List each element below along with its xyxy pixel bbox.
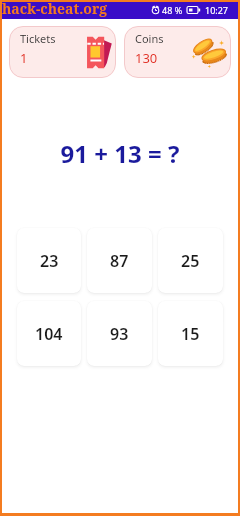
button[interactable]: 23 <box>17 228 81 293</box>
staticText: 15 <box>181 323 200 345</box>
button[interactable]: 104 <box>17 301 81 366</box>
staticText: 10:27 <box>205 4 229 16</box>
button[interactable]: Tickets <box>9 26 116 78</box>
button[interactable]: 15 <box>158 301 223 366</box>
staticText: 1 <box>20 49 28 67</box>
staticText: 93 <box>110 323 129 345</box>
staticText: 130 <box>135 49 158 67</box>
staticText: 23 <box>40 250 59 272</box>
staticText: 104 <box>35 323 63 345</box>
button[interactable]: 93 <box>87 301 152 366</box>
button[interactable]: 25 <box>158 228 223 293</box>
staticText: 25 <box>181 250 200 272</box>
staticText: 91 + 13 = ? <box>0 137 240 170</box>
staticText: hack-cheat.org <box>2 0 108 18</box>
button[interactable]: 87 <box>87 228 152 293</box>
staticText: 87 <box>110 250 129 272</box>
staticText: 48 % <box>162 4 183 16</box>
button[interactable]: Coins <box>124 26 231 78</box>
staticText: Tickets <box>20 31 56 46</box>
staticText: Coins <box>135 31 164 46</box>
